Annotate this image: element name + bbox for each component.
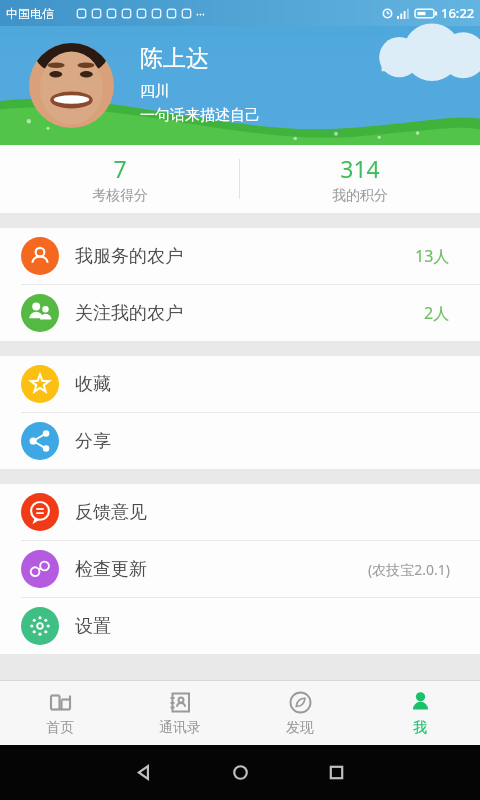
staticText: (农技宝2.0.1)	[368, 560, 450, 579]
button[interactable]: Home	[192, 745, 288, 800]
staticText: 16:22	[441, 4, 475, 22]
staticText: 陈上达	[140, 44, 209, 73]
button[interactable]: 设置	[0, 598, 480, 654]
staticText: 设置	[75, 615, 111, 638]
staticText: 考核得分	[92, 187, 148, 205]
button[interactable]: 我	[360, 690, 480, 737]
staticText: 收藏	[75, 373, 111, 396]
button[interactable]: 反馈意见	[0, 484, 480, 540]
button[interactable]: 通讯录	[120, 690, 240, 737]
staticText: 我的积分	[332, 187, 388, 205]
staticText: 2人	[424, 302, 450, 324]
button[interactable]: Recents	[288, 745, 384, 800]
staticText: 我	[413, 719, 427, 737]
button[interactable]: 分享	[0, 413, 480, 469]
button[interactable]: 7	[0, 153, 239, 205]
button[interactable]: 收藏	[0, 356, 480, 412]
button[interactable]: 首页	[0, 690, 120, 737]
button[interactable]: 314	[240, 153, 480, 205]
button[interactable]: Back	[96, 745, 192, 800]
staticText: 检查更新	[75, 558, 147, 581]
staticText: 我服务的农户	[75, 245, 183, 268]
staticText: 分享	[75, 430, 111, 453]
staticText: 一句话来描述自己	[140, 106, 260, 125]
staticText: 四川	[140, 82, 170, 101]
staticText: ···	[196, 6, 205, 21]
button[interactable]: Profile photo	[29, 43, 114, 128]
staticText: 314	[340, 153, 380, 184]
staticText: 13人	[415, 245, 450, 267]
staticText: 反馈意见	[75, 501, 147, 524]
staticText: 7	[113, 153, 127, 184]
button[interactable]: 发现	[240, 690, 360, 737]
staticText: 通讯录	[159, 719, 201, 737]
staticText: 关注我的农户	[75, 302, 183, 325]
button[interactable]: 关注我的农户	[0, 285, 480, 341]
staticText: 中国电信	[6, 6, 54, 21]
staticText: 首页	[46, 719, 74, 737]
button[interactable]: 检查更新	[0, 541, 480, 597]
staticText: 发现	[286, 719, 314, 737]
button[interactable]: 我服务的农户	[0, 228, 480, 284]
